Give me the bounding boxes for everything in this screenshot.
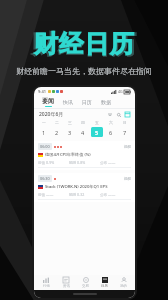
staticText: 日 <box>123 120 127 125</box>
staticText: Stack (1WORK.N) 2020年Q1 EPS <box>45 184 108 190</box>
button[interactable]: 要闻 <box>39 97 57 107</box>
staticText: 数据 <box>101 99 111 105</box>
staticText: 六 <box>109 120 113 125</box>
staticText: 快讯 <box>63 99 73 105</box>
staticText: 二 <box>55 120 59 125</box>
staticText: 4G <box>118 89 123 94</box>
button[interactable]: 数据 <box>98 99 114 105</box>
button[interactable]: 行情 <box>36 275 56 290</box>
button[interactable]: 5 <box>91 127 103 137</box>
staticText: 提醒 <box>124 177 131 181</box>
staticText: 公布 —— <box>100 192 116 197</box>
staticText: 1 <box>42 129 46 136</box>
staticText: 7 <box>123 129 127 136</box>
staticText: 五 <box>95 120 99 125</box>
staticText: 预测 0.8% <box>69 160 86 165</box>
staticText: 2020年6月 <box>39 111 64 118</box>
button[interactable]: 3 <box>64 127 75 137</box>
staticText: 日历 <box>82 99 92 105</box>
button[interactable]: 资讯 <box>56 275 76 290</box>
staticText: 前值 —— <box>38 192 54 197</box>
staticText: 公布 —— <box>100 160 116 165</box>
button[interactable]: 06:30 <box>34 173 135 202</box>
staticText: 财经前瞻一马当先，数据事件尽在指间 <box>16 66 152 76</box>
staticText: 06:30 <box>40 176 50 181</box>
staticText: 要闻 <box>42 97 54 105</box>
button[interactable]: 快讯 <box>60 99 76 105</box>
button[interactable]: Search <box>116 112 121 117</box>
staticText: 3 <box>68 129 72 136</box>
staticText: 资讯 <box>63 284 70 288</box>
staticText: 交易 <box>82 284 89 288</box>
staticText: 前值 0.9% <box>38 160 55 165</box>
button[interactable]: Filter <box>107 112 112 117</box>
button[interactable]: 7 <box>119 127 131 137</box>
staticText: 日历 <box>101 284 108 288</box>
button[interactable]: 6 <box>105 127 117 137</box>
button[interactable]: 交易 <box>76 275 95 290</box>
staticText: 9:41 <box>38 89 46 94</box>
button[interactable]: Calendar <box>125 112 130 117</box>
staticText: 提醒 <box>124 145 131 149</box>
staticText: 预测 0.32 <box>69 192 85 197</box>
staticText: 6 <box>109 129 113 136</box>
button[interactable]: 我的 <box>114 275 133 290</box>
staticText: 德国4月CPI年率终值 (%) <box>45 152 91 158</box>
staticText: 5 <box>95 129 99 136</box>
staticText: 财经日历 <box>34 29 135 59</box>
staticText: 2 <box>55 129 59 136</box>
staticText: 一 <box>42 120 46 125</box>
staticText: 三 <box>68 120 72 125</box>
button[interactable]: 日历 <box>95 275 114 290</box>
staticText: 行情 <box>43 284 50 288</box>
staticText: 06:00 <box>40 144 50 149</box>
button[interactable]: 2 <box>51 127 62 137</box>
button[interactable]: 06:00 <box>34 141 135 170</box>
staticText: 四 <box>81 120 85 125</box>
button[interactable]: 日历 <box>79 99 95 105</box>
staticText: 4 <box>81 129 85 136</box>
staticText: 财经日历 <box>32 29 137 60</box>
staticText: 我的 <box>120 284 127 288</box>
button[interactable]: 4 <box>77 127 89 137</box>
button[interactable]: 1 <box>38 127 49 137</box>
